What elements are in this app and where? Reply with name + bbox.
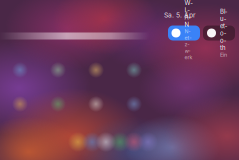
staticText: Ein xyxy=(220,52,227,58)
staticText: WLAN xyxy=(184,0,192,28)
staticText: Netzwerk xyxy=(184,28,192,60)
staticText: Bluetooth xyxy=(220,8,227,52)
staticText: Sa. 5. Apr xyxy=(164,11,196,19)
button[interactable]: WLAN xyxy=(168,25,200,40)
button[interactable]: Bluetooth xyxy=(203,25,235,40)
